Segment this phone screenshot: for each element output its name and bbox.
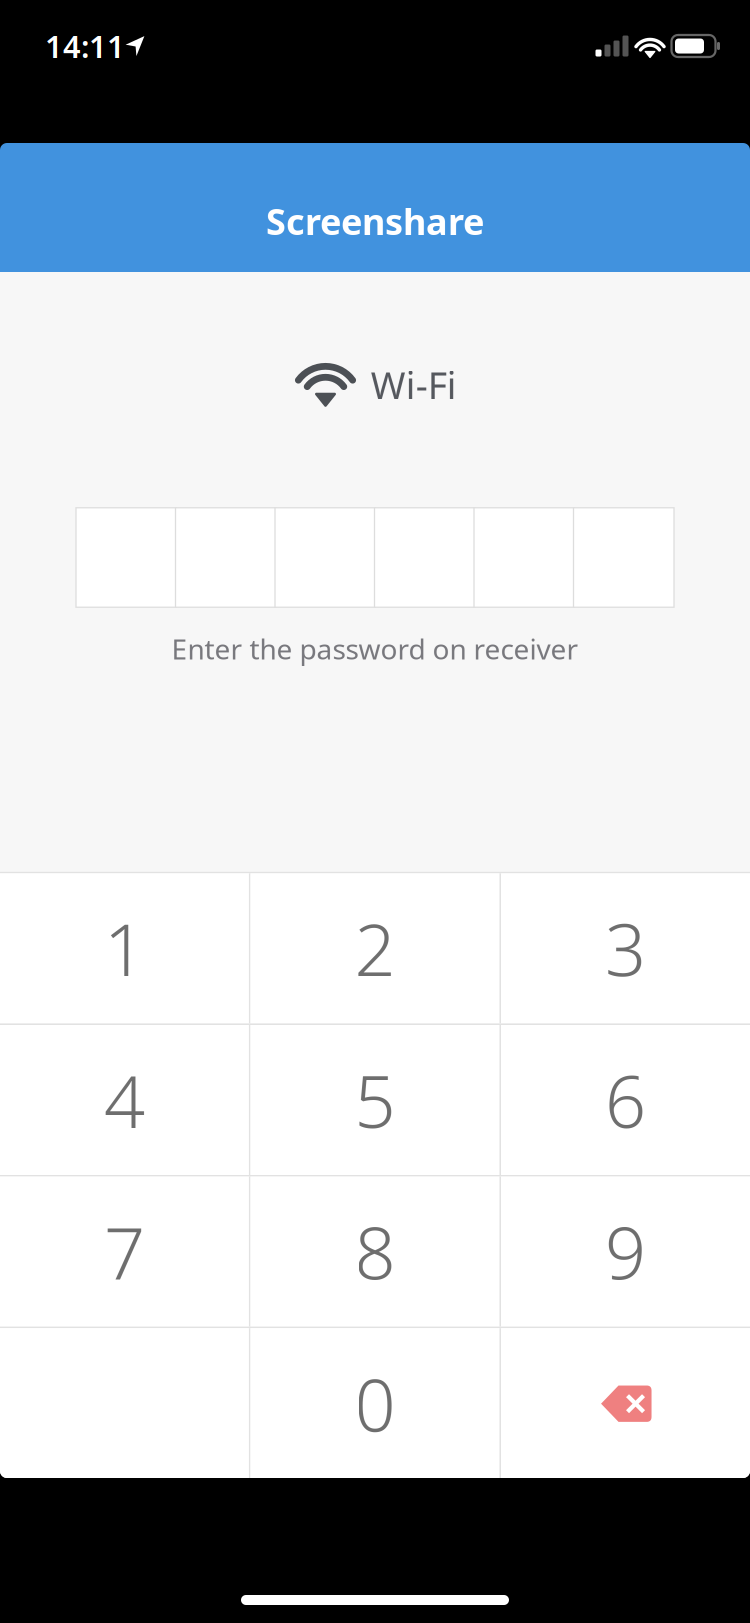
- staticText: 0: [354, 1356, 395, 1451]
- staticText: 1: [104, 901, 145, 996]
- staticText: 14:11: [45, 26, 125, 66]
- staticText: 3: [605, 901, 646, 996]
- staticText: Enter the password on receiver: [171, 630, 578, 667]
- staticText: 5: [354, 1052, 395, 1148]
- button[interactable]: 5: [250, 1025, 499, 1175]
- staticText: 6: [605, 1052, 646, 1148]
- staticText: 4: [104, 1052, 145, 1148]
- button[interactable]: 9: [501, 1177, 750, 1327]
- staticText: 8: [354, 1204, 395, 1299]
- button[interactable]: 6: [501, 1025, 750, 1175]
- staticText: Wi-Fi: [371, 360, 457, 410]
- button[interactable]: Delete: [501, 1328, 750, 1479]
- staticText: 7: [104, 1204, 145, 1299]
- staticText: 2: [354, 901, 395, 996]
- button[interactable]: 3: [501, 873, 750, 1023]
- button[interactable]: 1: [0, 873, 249, 1023]
- staticText: 9: [605, 1204, 646, 1299]
- button[interactable]: 4: [0, 1025, 249, 1175]
- button[interactable]: 8: [250, 1177, 499, 1327]
- button[interactable]: Password, 6 digits: [76, 508, 674, 607]
- button[interactable]: 0: [250, 1328, 499, 1479]
- button[interactable]: 2: [250, 873, 499, 1023]
- staticText: Screenshare: [266, 197, 484, 245]
- button[interactable]: 7: [0, 1177, 249, 1327]
